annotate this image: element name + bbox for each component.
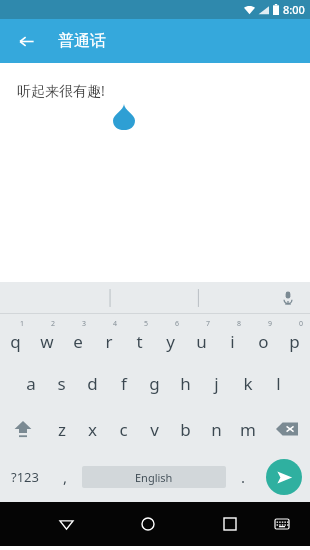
button[interactable]: Shift — [0, 406, 46, 452]
staticText: b — [180, 418, 191, 441]
button[interactable]: v — [139, 406, 170, 452]
staticText: a — [26, 372, 36, 395]
staticText: x — [88, 418, 97, 441]
button[interactable]: Voice input — [274, 284, 302, 312]
staticText: k — [243, 372, 253, 395]
button[interactable]: d — [77, 360, 108, 406]
staticText: v — [150, 418, 159, 441]
staticText: f — [121, 372, 127, 395]
button[interactable]: h — [170, 360, 201, 406]
staticText: i — [230, 330, 235, 353]
button[interactable]: 2 — [31, 314, 62, 360]
button[interactable]: f — [108, 360, 139, 406]
button[interactable]: English — [82, 466, 226, 488]
button[interactable]: 8 — [217, 314, 248, 360]
button[interactable]: 0 — [279, 314, 310, 360]
staticText: q — [10, 330, 21, 353]
staticText: h — [180, 372, 191, 395]
staticText: y — [166, 330, 175, 353]
staticText: u — [196, 330, 207, 353]
button[interactable]: 1 — [0, 314, 31, 360]
button[interactable]: 6 — [155, 314, 186, 360]
staticText: 8 — [237, 319, 242, 329]
button[interactable]: 4 — [93, 314, 124, 360]
button[interactable]: 9 — [248, 314, 279, 360]
button[interactable]: 3 — [62, 314, 93, 360]
button[interactable]: g — [139, 360, 170, 406]
staticText: p — [289, 330, 300, 353]
staticText: . — [241, 467, 246, 487]
staticText: , — [63, 467, 68, 487]
staticText: ?123 — [11, 468, 39, 486]
staticText: 0 — [299, 319, 304, 329]
button[interactable]: Back — [44, 502, 88, 546]
staticText: 3 — [82, 319, 87, 329]
button[interactable]: c — [108, 406, 139, 452]
button[interactable]: a — [15, 360, 46, 406]
button[interactable]: Home — [126, 502, 170, 546]
button[interactable]: ?123 — [0, 452, 50, 502]
button[interactable]: , — [50, 452, 80, 502]
staticText: t — [136, 330, 143, 353]
button[interactable]: m — [232, 406, 263, 452]
staticText: z — [58, 418, 66, 441]
staticText: g — [149, 372, 160, 395]
staticText: l — [276, 372, 281, 395]
staticText: o — [258, 330, 269, 353]
button[interactable]: l — [263, 360, 294, 406]
staticText: 5 — [144, 319, 149, 329]
button[interactable]: Send — [266, 459, 302, 495]
staticText: 7 — [206, 319, 211, 329]
staticText: 6 — [175, 319, 180, 329]
button[interactable]: n — [201, 406, 232, 452]
button[interactable]: z — [46, 406, 77, 452]
staticText: 普通话 — [58, 31, 106, 51]
staticText: e — [73, 330, 83, 353]
button[interactable]: s — [46, 360, 77, 406]
staticText: r — [105, 330, 113, 353]
button[interactable]: Recent apps — [208, 502, 252, 546]
staticText: s — [57, 372, 66, 395]
staticText: 4 — [113, 319, 118, 329]
button[interactable]: 7 — [186, 314, 217, 360]
staticText: j — [214, 372, 219, 395]
staticText: 1 — [20, 319, 25, 329]
staticText: 9 — [268, 319, 273, 329]
staticText: English — [135, 470, 173, 485]
staticText: n — [211, 418, 222, 441]
button[interactable]: b — [170, 406, 201, 452]
button[interactable]: Backspace — [263, 406, 310, 452]
button[interactable]: Switch keyboard — [262, 504, 302, 544]
button[interactable]: j — [201, 360, 232, 406]
button[interactable]: . — [228, 452, 258, 502]
staticText: w — [40, 330, 54, 353]
staticText: m — [240, 418, 256, 441]
staticText: d — [87, 372, 98, 395]
staticText: 听起来很有趣! — [17, 81, 105, 100]
button[interactable]: Back — [10, 25, 42, 57]
staticText: c — [119, 418, 128, 441]
button[interactable]: 5 — [124, 314, 155, 360]
staticText: 8:00 — [283, 2, 305, 17]
staticText: 2 — [51, 319, 56, 329]
button[interactable]: x — [77, 406, 108, 452]
button[interactable]: k — [232, 360, 263, 406]
